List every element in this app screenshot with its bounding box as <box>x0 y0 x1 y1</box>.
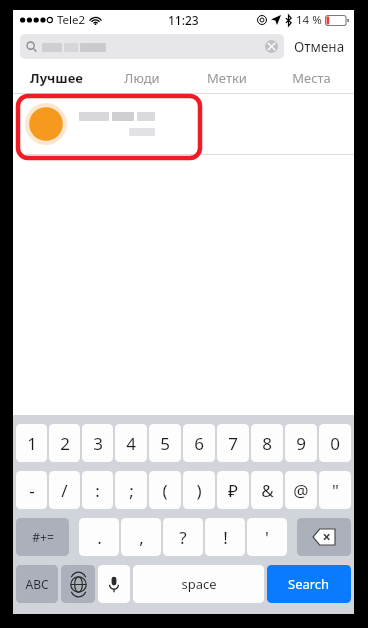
button[interactable]: Backspace <box>297 518 351 556</box>
staticText: & <box>261 479 274 502</box>
staticText: 8 <box>262 432 272 455</box>
button[interactable]: : <box>82 471 113 509</box>
staticText: ? <box>179 526 187 549</box>
staticText: 14 % <box>296 12 322 28</box>
button[interactable]: Лучшее <box>13 63 99 93</box>
staticText: Люди <box>124 69 160 87</box>
button[interactable]: & <box>251 471 283 509</box>
button[interactable]: #+= <box>16 518 69 556</box>
button[interactable]: - <box>16 471 47 509</box>
staticText: ABC <box>25 576 49 592</box>
staticText: - <box>29 479 35 502</box>
button[interactable]: ? <box>163 518 203 556</box>
staticText: @ <box>293 479 309 502</box>
staticText: 11:23 <box>168 12 199 28</box>
staticText: ; <box>129 479 134 502</box>
staticText: 4 <box>126 432 136 455</box>
button[interactable]: / <box>49 471 80 509</box>
staticText: : <box>95 479 100 502</box>
staticText: Отмена <box>294 38 345 56</box>
button[interactable]: . <box>79 518 119 556</box>
button[interactable]: 7 <box>217 424 249 462</box>
staticText: ( <box>162 479 168 502</box>
staticText: , <box>139 526 144 549</box>
button[interactable]: 8 <box>251 424 283 462</box>
button[interactable]: Change keyboard language <box>61 565 95 603</box>
staticText: ' <box>265 526 269 549</box>
staticText: ! <box>223 526 228 549</box>
button[interactable]: 2 <box>49 424 80 462</box>
button[interactable] <box>13 94 354 154</box>
staticText: 2 <box>60 432 70 455</box>
button[interactable]: , <box>121 518 161 556</box>
button[interactable]: ( <box>149 471 181 509</box>
button[interactable]: ' <box>247 518 287 556</box>
staticText: 0 <box>330 432 340 455</box>
staticText: Лучшее <box>30 69 83 87</box>
button[interactable]: Search <box>20 34 284 59</box>
button[interactable]: ) <box>183 471 215 509</box>
button[interactable]: Search <box>267 565 351 603</box>
button[interactable]: ABC <box>16 565 58 603</box>
staticText: " <box>332 479 339 502</box>
staticText: 9 <box>296 432 306 455</box>
staticText: 1 <box>27 432 37 455</box>
button[interactable]: @ <box>285 471 317 509</box>
staticText: Места <box>292 69 331 87</box>
button[interactable]: 0 <box>319 424 351 462</box>
button[interactable]: 6 <box>183 424 215 462</box>
button[interactable]: ₽ <box>217 471 249 509</box>
button[interactable]: Dictation <box>98 565 130 603</box>
button[interactable]: 5 <box>149 424 181 462</box>
button[interactable]: Места <box>269 63 354 93</box>
staticText: / <box>61 479 68 502</box>
staticText: #+= <box>32 529 54 545</box>
staticText: ₽ <box>228 479 238 502</box>
button[interactable]: " <box>319 471 351 509</box>
staticText: 5 <box>160 432 170 455</box>
button[interactable]: ; <box>115 471 147 509</box>
staticText: space <box>181 575 217 593</box>
button[interactable]: Clear text <box>265 40 278 53</box>
button[interactable]: space <box>133 565 264 603</box>
button[interactable]: 4 <box>115 424 147 462</box>
staticText: 7 <box>228 432 238 455</box>
button[interactable]: 9 <box>285 424 317 462</box>
button[interactable]: ! <box>205 518 245 556</box>
staticText: Метки <box>207 69 247 87</box>
button[interactable]: Отмена <box>292 34 347 60</box>
staticText: . <box>97 526 102 549</box>
button[interactable]: Люди <box>99 63 184 93</box>
button[interactable]: 1 <box>16 424 47 462</box>
other: Search <box>26 41 37 52</box>
button[interactable]: Метки <box>184 63 269 93</box>
staticText: ) <box>196 479 202 502</box>
button[interactable]: 3 <box>82 424 113 462</box>
staticText: Tele2 <box>57 12 86 28</box>
staticText: 6 <box>194 432 204 455</box>
staticText: Search <box>288 575 330 593</box>
staticText: 3 <box>93 432 103 455</box>
